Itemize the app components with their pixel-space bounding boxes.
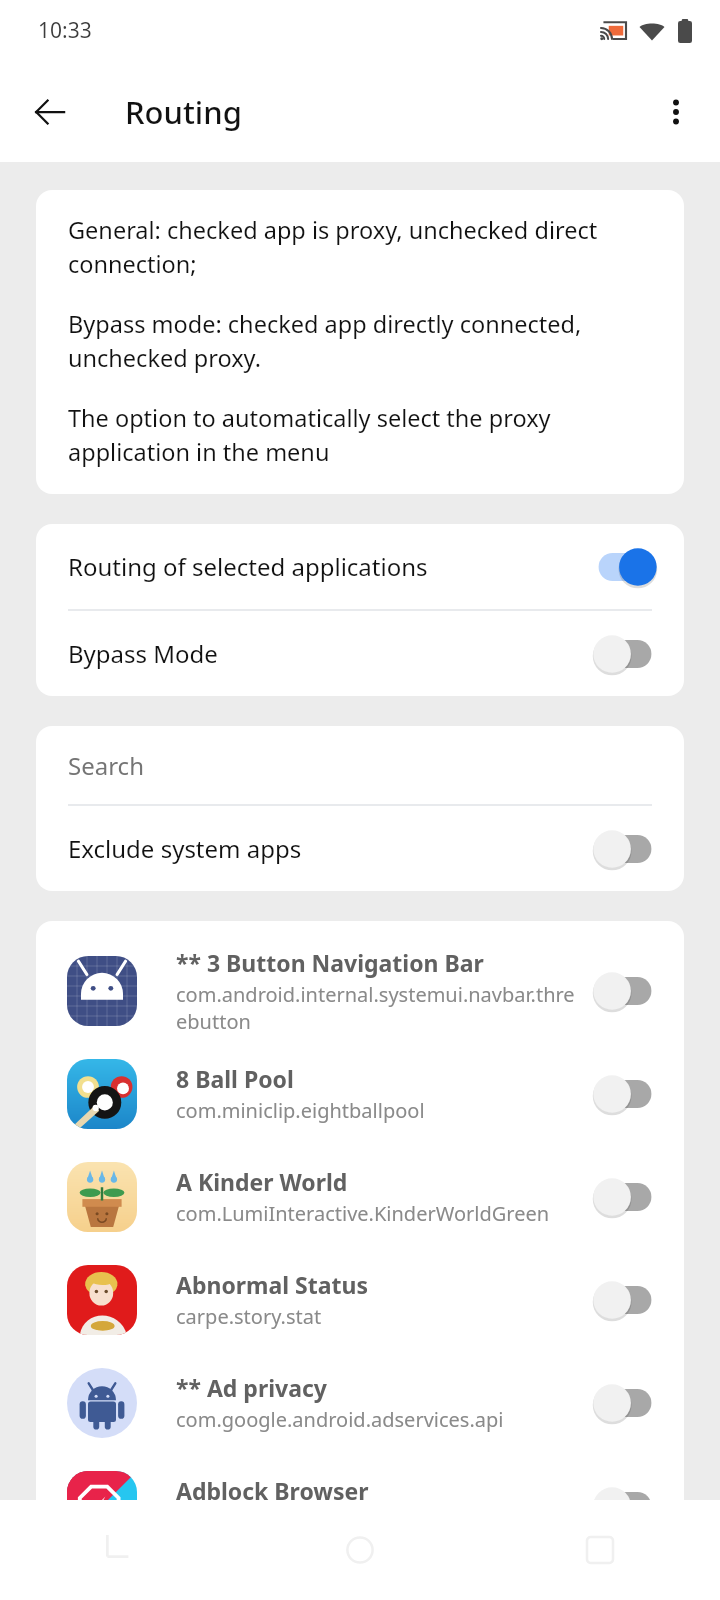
button[interactable]: Back [22,84,78,140]
staticText: Adblock Browser [176,1475,369,1506]
button[interactable]: Recent apps [573,1523,627,1577]
staticText: Search [68,749,144,782]
button[interactable]: More options [648,84,704,140]
button[interactable]: Routing of selected applications [36,524,684,609]
staticText: 8 Ball Pool [176,1063,294,1094]
button[interactable]: Search [36,726,684,804]
staticText: 10:33 [38,16,92,45]
staticText: A Kinder World [176,1166,348,1197]
button[interactable]: A Kinder World [36,1145,684,1248]
staticText: The option to automatically select the p… [68,402,658,468]
staticText: Bypass mode: checked app directly connec… [68,308,658,374]
staticText: Routing [125,91,242,133]
staticText: com.miniclip.eightballpool [176,1097,425,1124]
button[interactable]: ** Ad privacy [36,1351,684,1454]
button[interactable]: Home [333,1523,387,1577]
button[interactable]: Bypass Mode [36,611,684,696]
staticText: Bypass Mode [68,637,592,670]
button[interactable]: 8 Ball Pool [36,1042,684,1145]
staticText: General: checked app is proxy, unchecked… [68,214,658,280]
staticText: ** Ad privacy [176,1372,327,1403]
staticText: carpe.story.stat [176,1303,322,1330]
staticText: Abnormal Status [176,1269,369,1300]
staticText: com.google.android.adservices.api [176,1406,504,1433]
staticText: Exclude system apps [68,832,592,865]
staticText: Routing of selected applications [68,550,592,583]
button[interactable]: Exclude system apps [36,806,684,891]
button[interactable]: Adblock Browser [36,1454,684,1557]
staticText: ** 3 Button Navigation Bar [176,947,484,978]
button[interactable]: ** 3 Button Navigation Bar [36,939,684,1042]
staticText: com.android.internal.systemui.navbar.thr… [176,981,582,1035]
staticText: com.LumiInteractive.KinderWorldGreen [176,1200,550,1227]
button[interactable]: Abnormal Status [36,1248,684,1351]
